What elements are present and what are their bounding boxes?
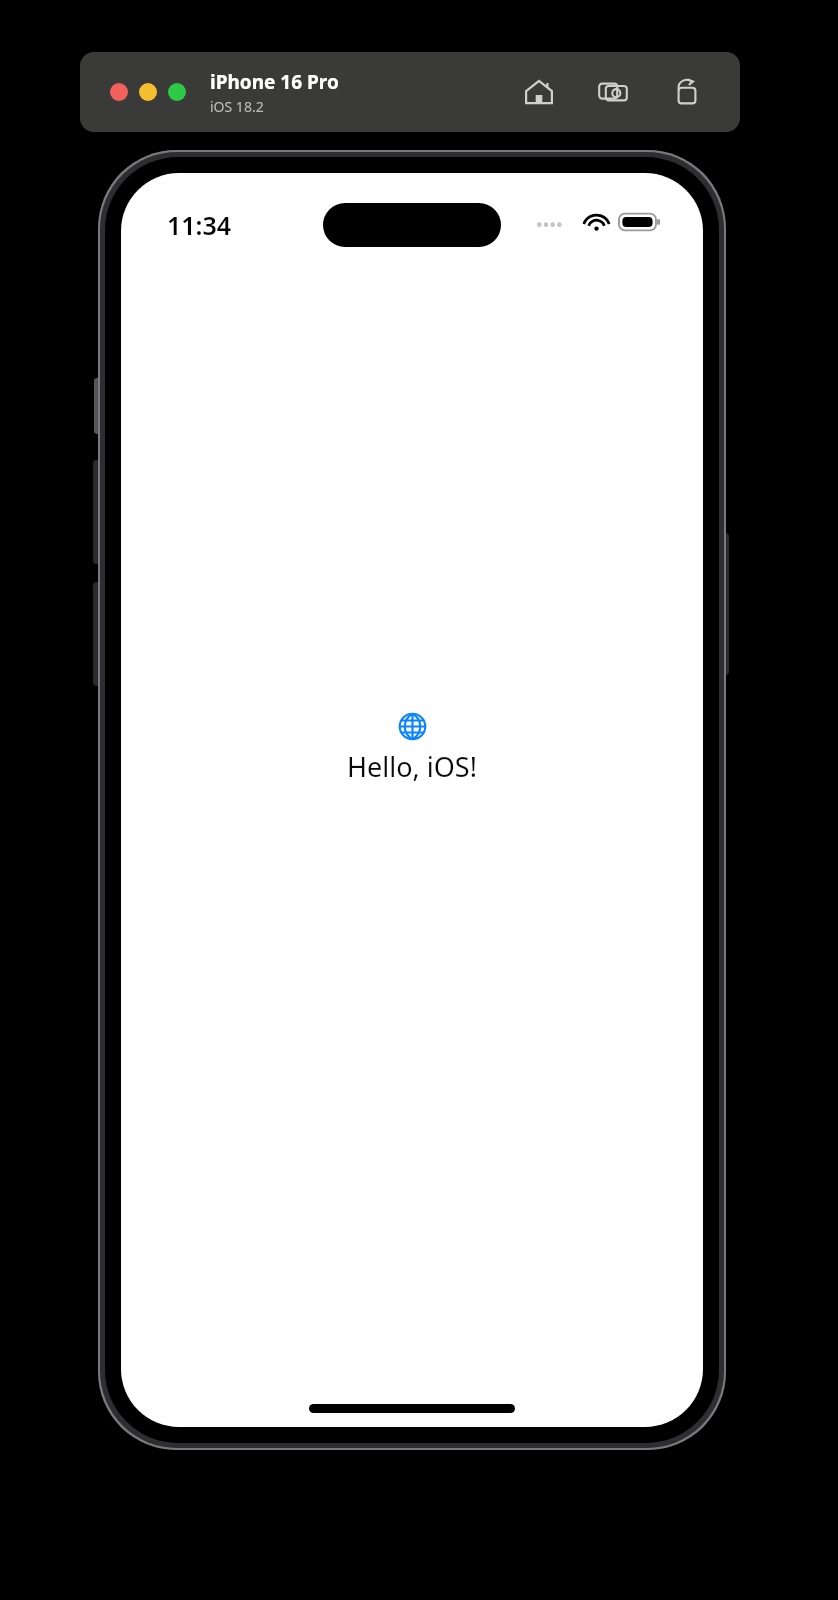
button[interactable]: Rotate: [668, 73, 706, 111]
button[interactable]: [110, 83, 128, 101]
button[interactable]: Home: [520, 73, 558, 111]
button[interactable]: [168, 83, 186, 101]
staticText: Hello, iOS!: [347, 748, 477, 785]
button[interactable]: [139, 83, 157, 101]
staticText: 11:34: [167, 208, 232, 242]
staticText: iOS 18.2: [210, 97, 264, 116]
staticText: iPhone 16 Pro: [210, 69, 339, 95]
button[interactable]: Screenshot: [594, 73, 632, 111]
